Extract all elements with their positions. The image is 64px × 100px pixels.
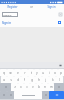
staticText: Sign in [2,21,12,25]
button[interactable]: m [48,83,54,91]
button[interactable]: q [0,69,7,76]
staticText: q [3,71,5,75]
staticText: p [60,71,62,75]
staticText: u [42,71,44,75]
button[interactable]: c [24,83,30,91]
button[interactable]: Help [58,12,62,16]
button[interactable]: v [30,83,36,91]
staticText: w [9,71,12,75]
staticText: y [36,71,38,75]
button[interactable]: t [28,69,34,76]
staticText: o [54,71,56,75]
button[interactable]: e [14,69,21,76]
button[interactable]: a [1,76,7,83]
staticText: e [17,71,19,75]
staticText: r [24,71,26,75]
staticText: name@ [3,13,12,16]
staticText: m [50,85,53,89]
button[interactable]: Enter [49,91,64,99]
button[interactable]: Backspace [54,83,64,91]
button[interactable]: Space [14,91,42,99]
staticText: Sign in [47,5,56,9]
staticText: Register [7,5,18,9]
staticText: c [26,85,28,89]
button[interactable]: h [35,76,42,83]
button[interactable]: x [18,83,24,91]
button[interactable]: Emoji [7,91,14,99]
staticText: i [49,71,50,75]
button[interactable]: j [42,76,49,83]
button[interactable]: Shift [0,83,11,91]
button[interactable]: k [49,76,56,83]
staticText: s [10,78,12,82]
staticText: a [3,78,5,82]
button[interactable]: Symbols [0,91,7,99]
staticText: v [32,85,34,89]
button[interactable]: w [7,69,14,76]
button[interactable]: l [56,76,63,83]
button[interactable]: u [40,69,46,76]
button[interactable]: d [14,76,21,83]
button[interactable]: f [21,76,28,83]
staticText: or [30,5,33,9]
button[interactable]: n [42,83,48,91]
button[interactable]: Sign in [39,4,64,10]
button[interactable]: Keyboard settings [58,63,62,67]
button[interactable]: p [58,69,64,76]
button[interactable]: Sign in [2,20,12,25]
button[interactable]: b [36,83,42,91]
button[interactable]: Register [0,4,24,10]
button[interactable]: Period [42,91,49,99]
staticText: f [24,78,25,82]
staticText: g [31,78,33,82]
staticText: z [14,85,16,89]
button[interactable]: i [46,69,52,76]
staticText: h [38,78,40,82]
button[interactable]: z [11,83,18,91]
staticText: d [17,78,19,82]
button[interactable]: y [34,69,40,76]
staticText: n [44,85,46,89]
button[interactable]: or [24,4,39,10]
staticText: j [45,78,46,82]
button[interactable]: r [21,69,28,76]
button[interactable]: name@ [2,12,18,17]
button[interactable]: s [7,76,14,83]
staticText: b [38,85,40,89]
staticText: k [52,78,54,82]
button[interactable]: o [52,69,58,76]
staticText: l [59,78,60,82]
button[interactable]: Submit [57,20,62,25]
button[interactable]: g [28,76,35,83]
staticText: t [31,71,32,75]
staticText: x [20,85,22,89]
